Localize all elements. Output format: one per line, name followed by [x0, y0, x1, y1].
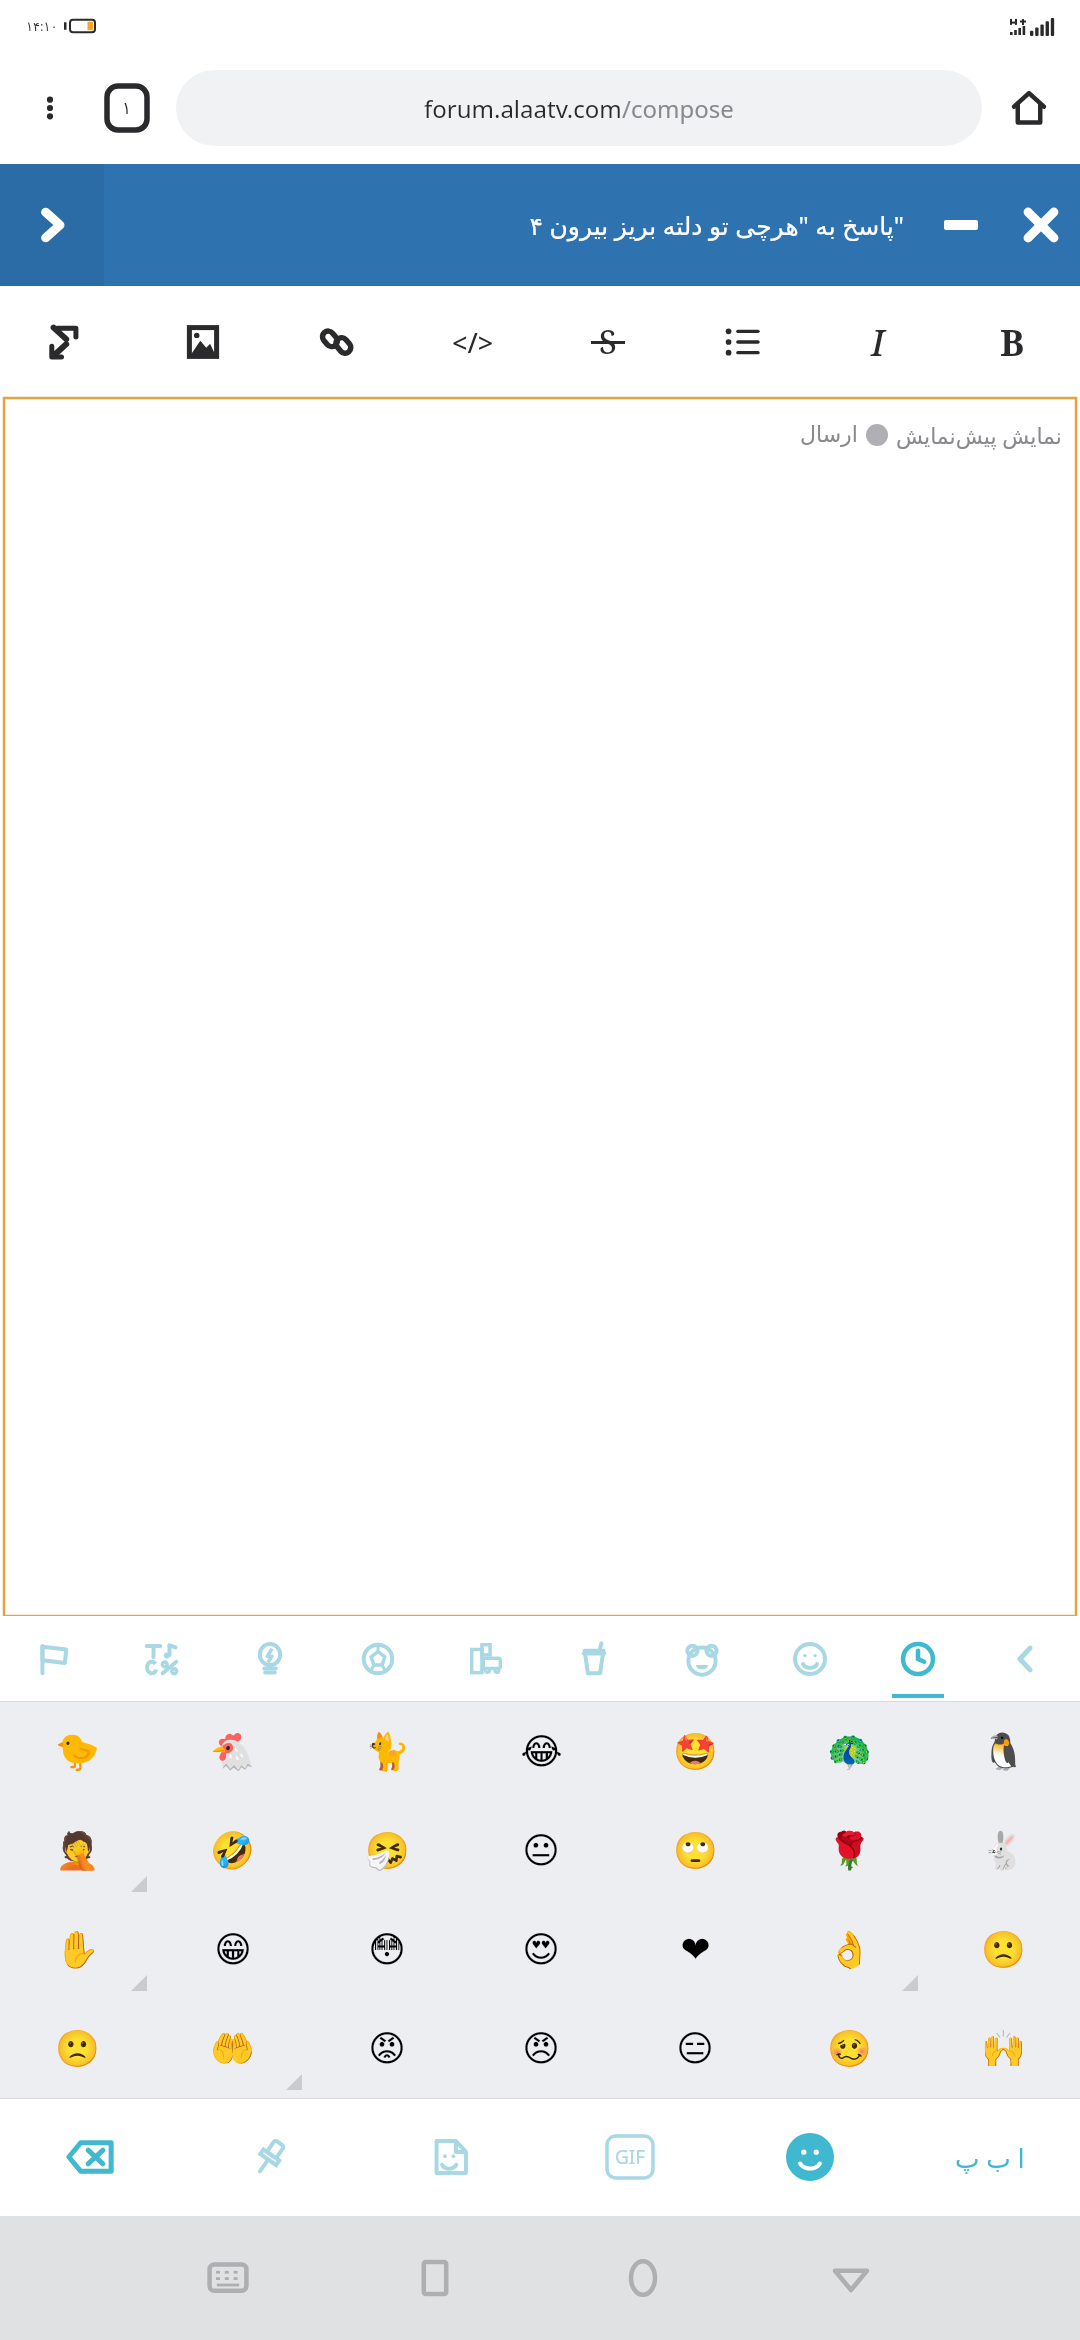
- staticText: 🤣: [210, 1830, 255, 1872]
- staticText: 🐈: [365, 1731, 410, 1773]
- button[interactable]: Emoji 😠: [464, 1999, 618, 2098]
- button[interactable]: Emoji 😁: [155, 1900, 310, 1999]
- staticText: پاسخ به "هرچی تو دلته بریز بیرون ۴": [529, 208, 904, 242]
- staticText: 🙁: [55, 2028, 100, 2070]
- staticText: 🙁: [981, 1929, 1026, 1971]
- button[interactable]: Emoji 🥴: [772, 1999, 926, 2098]
- staticText: 😍: [522, 1929, 560, 1971]
- staticText: 🥴: [827, 2028, 872, 2070]
- button[interactable]: Emoji 🙄: [618, 1801, 772, 1900]
- button[interactable]: Sticker: [360, 2098, 540, 2216]
- button[interactable]: Emoji 🤦: [0, 1801, 155, 1900]
- staticText: 😠: [522, 2028, 560, 2070]
- button[interactable]: Smileys: [756, 1616, 864, 1702]
- button[interactable]: Emoji 🤩: [618, 1702, 772, 1801]
- button[interactable]: List: [675, 286, 810, 398]
- staticText: ا ب پ: [955, 2140, 1025, 2175]
- button[interactable]: Emoji ❤️: [618, 1900, 772, 1999]
- button[interactable]: Backspace: [0, 2098, 180, 2216]
- staticText: 🤲: [210, 2028, 255, 2070]
- staticText: 🦚: [827, 1731, 872, 1773]
- button[interactable]: Emoji 🐇: [926, 1801, 1080, 1900]
- button[interactable]: Back: [747, 2216, 955, 2340]
- button[interactable]: Italic: [810, 286, 945, 398]
- button[interactable]: Fullscreen: [0, 286, 135, 398]
- staticText: 🤦: [55, 1830, 100, 1872]
- button[interactable]: Language: [900, 2098, 1080, 2216]
- button[interactable]: Emoji 😂: [464, 1702, 618, 1801]
- staticText: 😂: [520, 1731, 563, 1773]
- button[interactable]: Activities: [324, 1616, 432, 1702]
- button[interactable]: Food: [540, 1616, 648, 1702]
- staticText: 😁: [214, 1929, 252, 1971]
- button[interactable]: Emoji 👌: [772, 1900, 926, 1999]
- button[interactable]: Home: [1000, 79, 1058, 137]
- button[interactable]: Minimize: [920, 164, 1002, 286]
- staticText: </>: [452, 324, 494, 361]
- button[interactable]: Emoji 🐈: [310, 1702, 464, 1801]
- staticText: 😡: [368, 2028, 406, 2070]
- staticText: 🐤: [55, 1731, 100, 1773]
- staticText: S: [599, 320, 617, 364]
- staticText: 🤧: [365, 1830, 410, 1872]
- button[interactable]: Emoji 🤣: [155, 1801, 310, 1900]
- staticText: 😐: [522, 1830, 560, 1872]
- staticText: I: [871, 318, 885, 367]
- staticText: ارسال: [800, 422, 858, 448]
- button[interactable]: Emoji 🤲: [155, 1999, 310, 2098]
- button[interactable]: Back: [972, 1616, 1080, 1702]
- button[interactable]: forum.alaatv.com: [176, 70, 982, 146]
- button[interactable]: Image: [135, 286, 270, 398]
- button[interactable]: ارسال: [4, 398, 1076, 1616]
- button[interactable]: Emoji 😡: [310, 1999, 464, 2098]
- button[interactable]: Emoji 🌹: [772, 1801, 926, 1900]
- button[interactable]: Emoji 🙁: [926, 1900, 1080, 1999]
- staticText: ✋: [55, 1929, 100, 1971]
- staticText: ۱۴:۱۰: [26, 17, 58, 35]
- button[interactable]: More options: [22, 80, 78, 136]
- staticText: 🌹: [827, 1830, 872, 1872]
- button[interactable]: Expand: [0, 164, 104, 286]
- staticText: 🙄: [673, 1830, 718, 1872]
- staticText: ۱: [122, 98, 132, 118]
- button[interactable]: Emoji 🤧: [310, 1801, 464, 1900]
- button[interactable]: Emoji: [720, 2098, 900, 2216]
- button[interactable]: Emoji 😐: [464, 1801, 618, 1900]
- button[interactable]: Strikethrough: [540, 286, 675, 398]
- button[interactable]: Symbols: [108, 1616, 216, 1702]
- staticText: ❤️: [680, 1929, 711, 1971]
- staticText: B: [1000, 318, 1025, 367]
- button[interactable]: Close: [1002, 164, 1080, 286]
- staticText: 🤩: [673, 1731, 718, 1773]
- button[interactable]: Keyboard: [124, 2216, 331, 2340]
- button[interactable]: Objects: [216, 1616, 324, 1702]
- button[interactable]: Emoji 🙁: [0, 1999, 155, 2098]
- button[interactable]: پاسخ به "هرچی تو دلته بریز بیرون ۴": [104, 164, 920, 286]
- button[interactable]: Emoji ✋: [0, 1900, 155, 1999]
- button[interactable]: Link: [270, 286, 405, 398]
- staticText: 🐔: [210, 1731, 255, 1773]
- button[interactable]: Emoji 🐔: [155, 1702, 310, 1801]
- staticText: forum.alaatv.com: [424, 92, 622, 125]
- button[interactable]: Emoji 🦚: [772, 1702, 926, 1801]
- staticText: نمایش پیش‌نمایش: [896, 420, 1062, 450]
- button[interactable]: Emoji 🐤: [0, 1702, 155, 1801]
- button[interactable]: Emoji 😑: [618, 1999, 772, 2098]
- button[interactable]: Flags: [0, 1616, 108, 1702]
- button[interactable]: Emoji 🐧: [926, 1702, 1080, 1801]
- button[interactable]: GIF: [540, 2098, 720, 2216]
- button[interactable]: Pin: [180, 2098, 360, 2216]
- button[interactable]: Recent: [864, 1616, 972, 1702]
- button[interactable]: Home: [539, 2216, 747, 2340]
- button[interactable]: Emoji 🙌: [926, 1999, 1080, 2098]
- button[interactable]: Bold: [945, 286, 1080, 398]
- button[interactable]: Travel: [432, 1616, 540, 1702]
- button[interactable]: Emoji 😍: [464, 1900, 618, 1999]
- button[interactable]: Recents: [331, 2216, 539, 2340]
- button[interactable]: Animals: [648, 1616, 756, 1702]
- staticText: 😳: [368, 1929, 406, 1971]
- button[interactable]: Emoji 😳: [310, 1900, 464, 1999]
- button[interactable]: Tabs: [100, 81, 154, 135]
- staticText: 🙌: [981, 2028, 1026, 2070]
- button[interactable]: Code: [405, 286, 540, 398]
